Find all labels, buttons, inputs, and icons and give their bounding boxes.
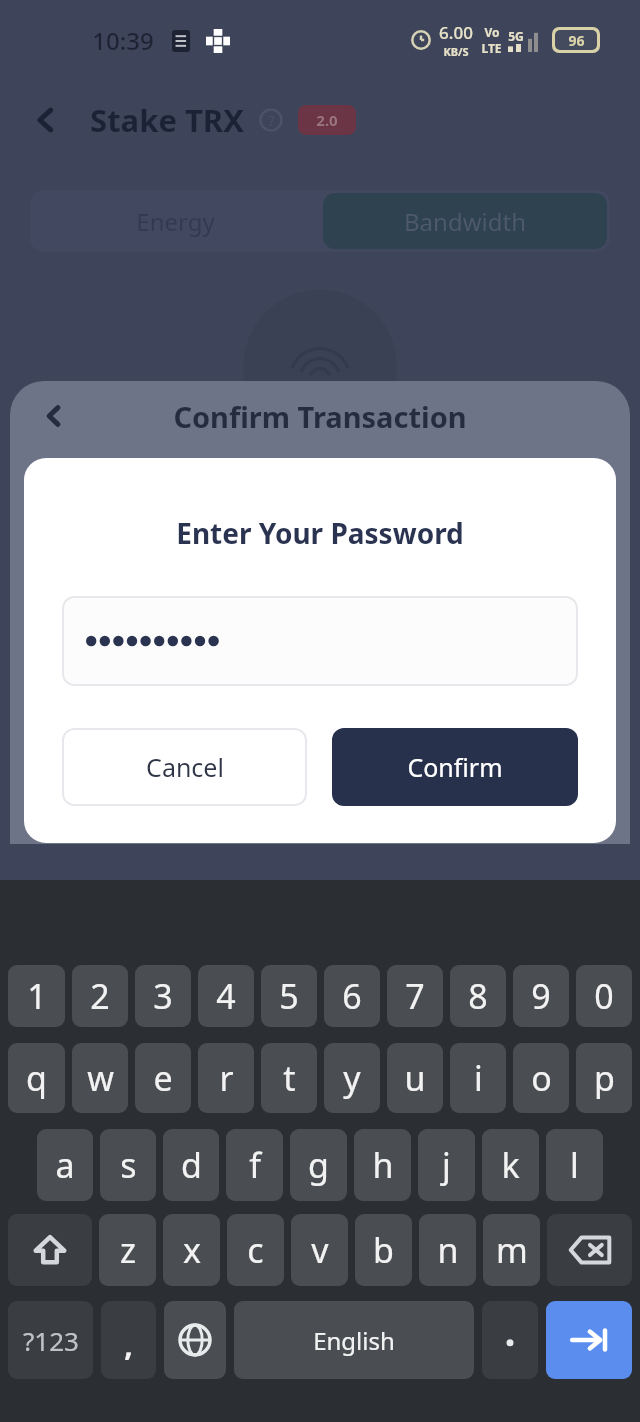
button[interactable]: 3: [135, 965, 191, 1027]
button[interactable]: Back: [32, 394, 76, 438]
staticText: Confirm: [407, 750, 503, 784]
staticText: Current Acct: [473, 801, 596, 830]
button[interactable]: p: [576, 1043, 632, 1113]
staticText: r: [219, 1055, 234, 1101]
staticText: 1: [27, 973, 47, 1019]
staticText: Stake TRX: [90, 99, 244, 141]
button[interactable]: 1: [8, 965, 65, 1027]
button[interactable]: Confirm: [332, 728, 578, 806]
button[interactable]: 8: [450, 965, 506, 1027]
staticText: 5G: [508, 28, 524, 44]
button[interactable]: [62, 596, 578, 686]
button[interactable]: t: [261, 1043, 317, 1113]
staticText: 10:39: [92, 24, 154, 57]
button[interactable]: Change language: [164, 1301, 226, 1379]
staticText: s: [120, 1142, 137, 1188]
staticText: a: [55, 1142, 75, 1188]
button[interactable]: Enter: [546, 1301, 632, 1379]
staticText: 7: [405, 973, 425, 1019]
button[interactable]: 0: [576, 965, 632, 1027]
button[interactable]: 2: [72, 965, 128, 1027]
staticText: English: [313, 1324, 395, 1357]
staticText: ,: [124, 1324, 133, 1365]
staticText: z: [120, 1227, 136, 1273]
staticText: b: [373, 1227, 394, 1273]
staticText: p: [594, 1055, 615, 1101]
button[interactable]: 4: [198, 965, 254, 1027]
button[interactable]: n: [419, 1214, 476, 1286]
staticText: Bandwidth: [404, 205, 526, 238]
staticText: 6: [342, 973, 362, 1019]
button[interactable]: ,: [101, 1301, 156, 1379]
staticText: 8: [468, 973, 488, 1019]
staticText: 2: [90, 973, 110, 1019]
staticText: h: [372, 1142, 394, 1188]
staticText: w: [87, 1055, 114, 1101]
button[interactable]: h: [354, 1129, 411, 1201]
button[interactable]: Shift: [8, 1214, 92, 1286]
staticText: 0: [594, 973, 614, 1019]
staticText: 4: [216, 973, 236, 1019]
staticText: q: [26, 1055, 47, 1101]
button[interactable]: j: [418, 1129, 475, 1201]
button[interactable]: Bandwidth: [323, 193, 607, 249]
staticText: t: [283, 1055, 296, 1101]
staticText: 96: [568, 31, 585, 50]
staticText: u: [404, 1055, 426, 1101]
staticText: 3: [153, 973, 173, 1019]
button[interactable]: 5: [261, 965, 317, 1027]
staticText: g: [308, 1142, 329, 1188]
staticText: ?123: [23, 1323, 79, 1358]
button[interactable]: q: [8, 1043, 65, 1113]
button[interactable]: 9: [513, 965, 569, 1027]
staticText: Vo: [484, 24, 500, 40]
button[interactable]: 7: [387, 965, 443, 1027]
button[interactable]: Cancel: [62, 728, 307, 806]
staticText: k: [501, 1142, 520, 1188]
button[interactable]: Help: [254, 103, 288, 137]
button[interactable]: k: [482, 1129, 539, 1201]
button[interactable]: b: [355, 1214, 412, 1286]
staticText: Energy: [136, 205, 215, 238]
button[interactable]: x: [163, 1214, 220, 1286]
button[interactable]: ?123: [8, 1301, 93, 1379]
button[interactable]: l: [546, 1129, 603, 1201]
staticText: Account: [44, 801, 124, 830]
staticText: LTE: [481, 40, 502, 56]
button[interactable]: m: [483, 1214, 540, 1286]
button[interactable]: z: [99, 1214, 156, 1286]
button[interactable]: a: [37, 1129, 93, 1201]
button[interactable]: [482, 1301, 538, 1379]
button[interactable]: o: [513, 1043, 569, 1113]
button[interactable]: u: [387, 1043, 443, 1113]
staticText: j: [442, 1142, 451, 1188]
button[interactable]: c: [227, 1214, 284, 1286]
button[interactable]: f: [226, 1129, 283, 1201]
staticText: e: [153, 1055, 173, 1101]
button[interactable]: r: [198, 1043, 254, 1113]
button[interactable]: English: [234, 1301, 474, 1379]
staticText: m: [496, 1227, 528, 1273]
staticText: 6.00: [439, 21, 473, 44]
button[interactable]: v: [291, 1214, 348, 1286]
button[interactable]: Backspace: [547, 1214, 632, 1286]
button[interactable]: w: [72, 1043, 128, 1113]
button[interactable]: 6: [324, 965, 380, 1027]
button[interactable]: e: [135, 1043, 191, 1113]
staticText: f: [249, 1142, 261, 1188]
button[interactable]: d: [163, 1129, 219, 1201]
staticText: 2.0: [316, 110, 338, 130]
staticText: x: [183, 1227, 201, 1273]
staticText: y: [343, 1055, 361, 1101]
button[interactable]: s: [100, 1129, 156, 1201]
staticText: Enter Your Password: [176, 514, 464, 552]
button[interactable]: i: [450, 1043, 506, 1113]
button[interactable]: g: [290, 1129, 347, 1201]
staticText: o: [531, 1055, 552, 1101]
staticText: v: [311, 1227, 329, 1273]
button[interactable]: y: [324, 1043, 380, 1113]
button[interactable]: Back: [22, 96, 70, 144]
staticText: 5: [279, 973, 299, 1019]
button[interactable]: 2.0: [298, 105, 356, 135]
